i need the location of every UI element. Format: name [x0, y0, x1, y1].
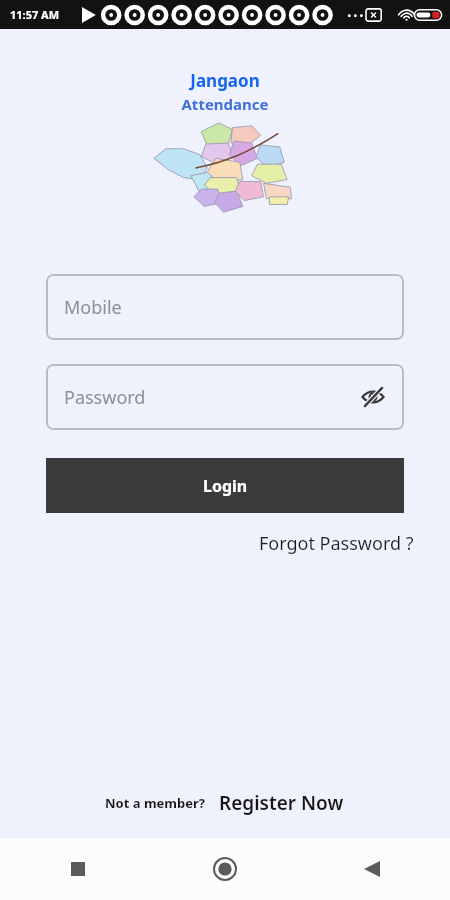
staticText: Forgot Password ?	[259, 531, 414, 556]
staticText: Attendance	[181, 94, 269, 114]
button[interactable]: Back	[352, 849, 392, 889]
staticText: Jangaon	[190, 69, 260, 92]
button[interactable]: Recent apps	[58, 849, 98, 889]
button[interactable]: Home	[205, 849, 245, 889]
button[interactable]: Forgot Password ?	[255, 527, 418, 560]
button[interactable]: Mobile	[46, 274, 404, 340]
button[interactable]: Show password	[358, 382, 388, 412]
staticText: Not a member?	[105, 794, 205, 812]
staticText: Login	[203, 475, 248, 497]
button[interactable]: Password	[46, 364, 404, 430]
button[interactable]: Login	[46, 458, 404, 513]
button[interactable]: Register Now	[217, 788, 346, 818]
staticText: Mobile	[64, 295, 122, 320]
staticText: Password	[64, 385, 146, 410]
staticText: 11:57 AM	[10, 7, 60, 22]
staticText: Register Now	[219, 790, 344, 816]
